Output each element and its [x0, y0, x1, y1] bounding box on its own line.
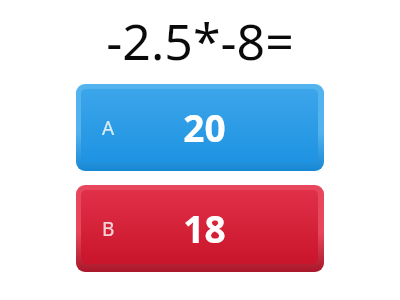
- button[interactable]: A: [76, 84, 324, 171]
- staticText: 20: [183, 102, 226, 152]
- staticText: A: [102, 115, 115, 141]
- staticText: -2.5*-8=: [106, 7, 294, 75]
- button[interactable]: B: [76, 185, 324, 272]
- staticText: 18: [183, 203, 226, 253]
- staticText: B: [102, 216, 115, 242]
